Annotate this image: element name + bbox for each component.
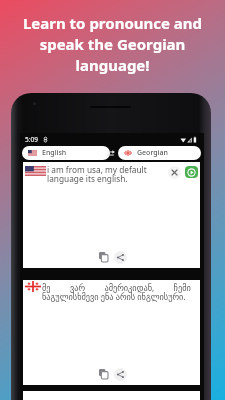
button[interactable]: English [22, 146, 110, 160]
button[interactable]: Copy [96, 250, 110, 264]
staticText: i am from usa, my default language its e… [47, 164, 168, 185]
button[interactable]: Share [114, 368, 127, 381]
staticText: English [42, 148, 67, 158]
staticText: Learn to pronounce and speak the Georgia… [11, 13, 214, 76]
button[interactable]: Swap languages [105, 146, 116, 160]
button[interactable]: Share [114, 251, 127, 264]
button[interactable]: Georgian [118, 146, 201, 160]
button[interactable]: Play pronunciation [185, 166, 198, 178]
button[interactable]: Clear text [168, 166, 181, 179]
staticText: Georgian [137, 148, 168, 158]
button[interactable]: Copy [96, 367, 110, 381]
staticText: მე ვარ ამერიკიდან, ჩემი ნაგულისხმევი ენა… [42, 282, 194, 303]
staticText: 5:09 [25, 135, 38, 144]
